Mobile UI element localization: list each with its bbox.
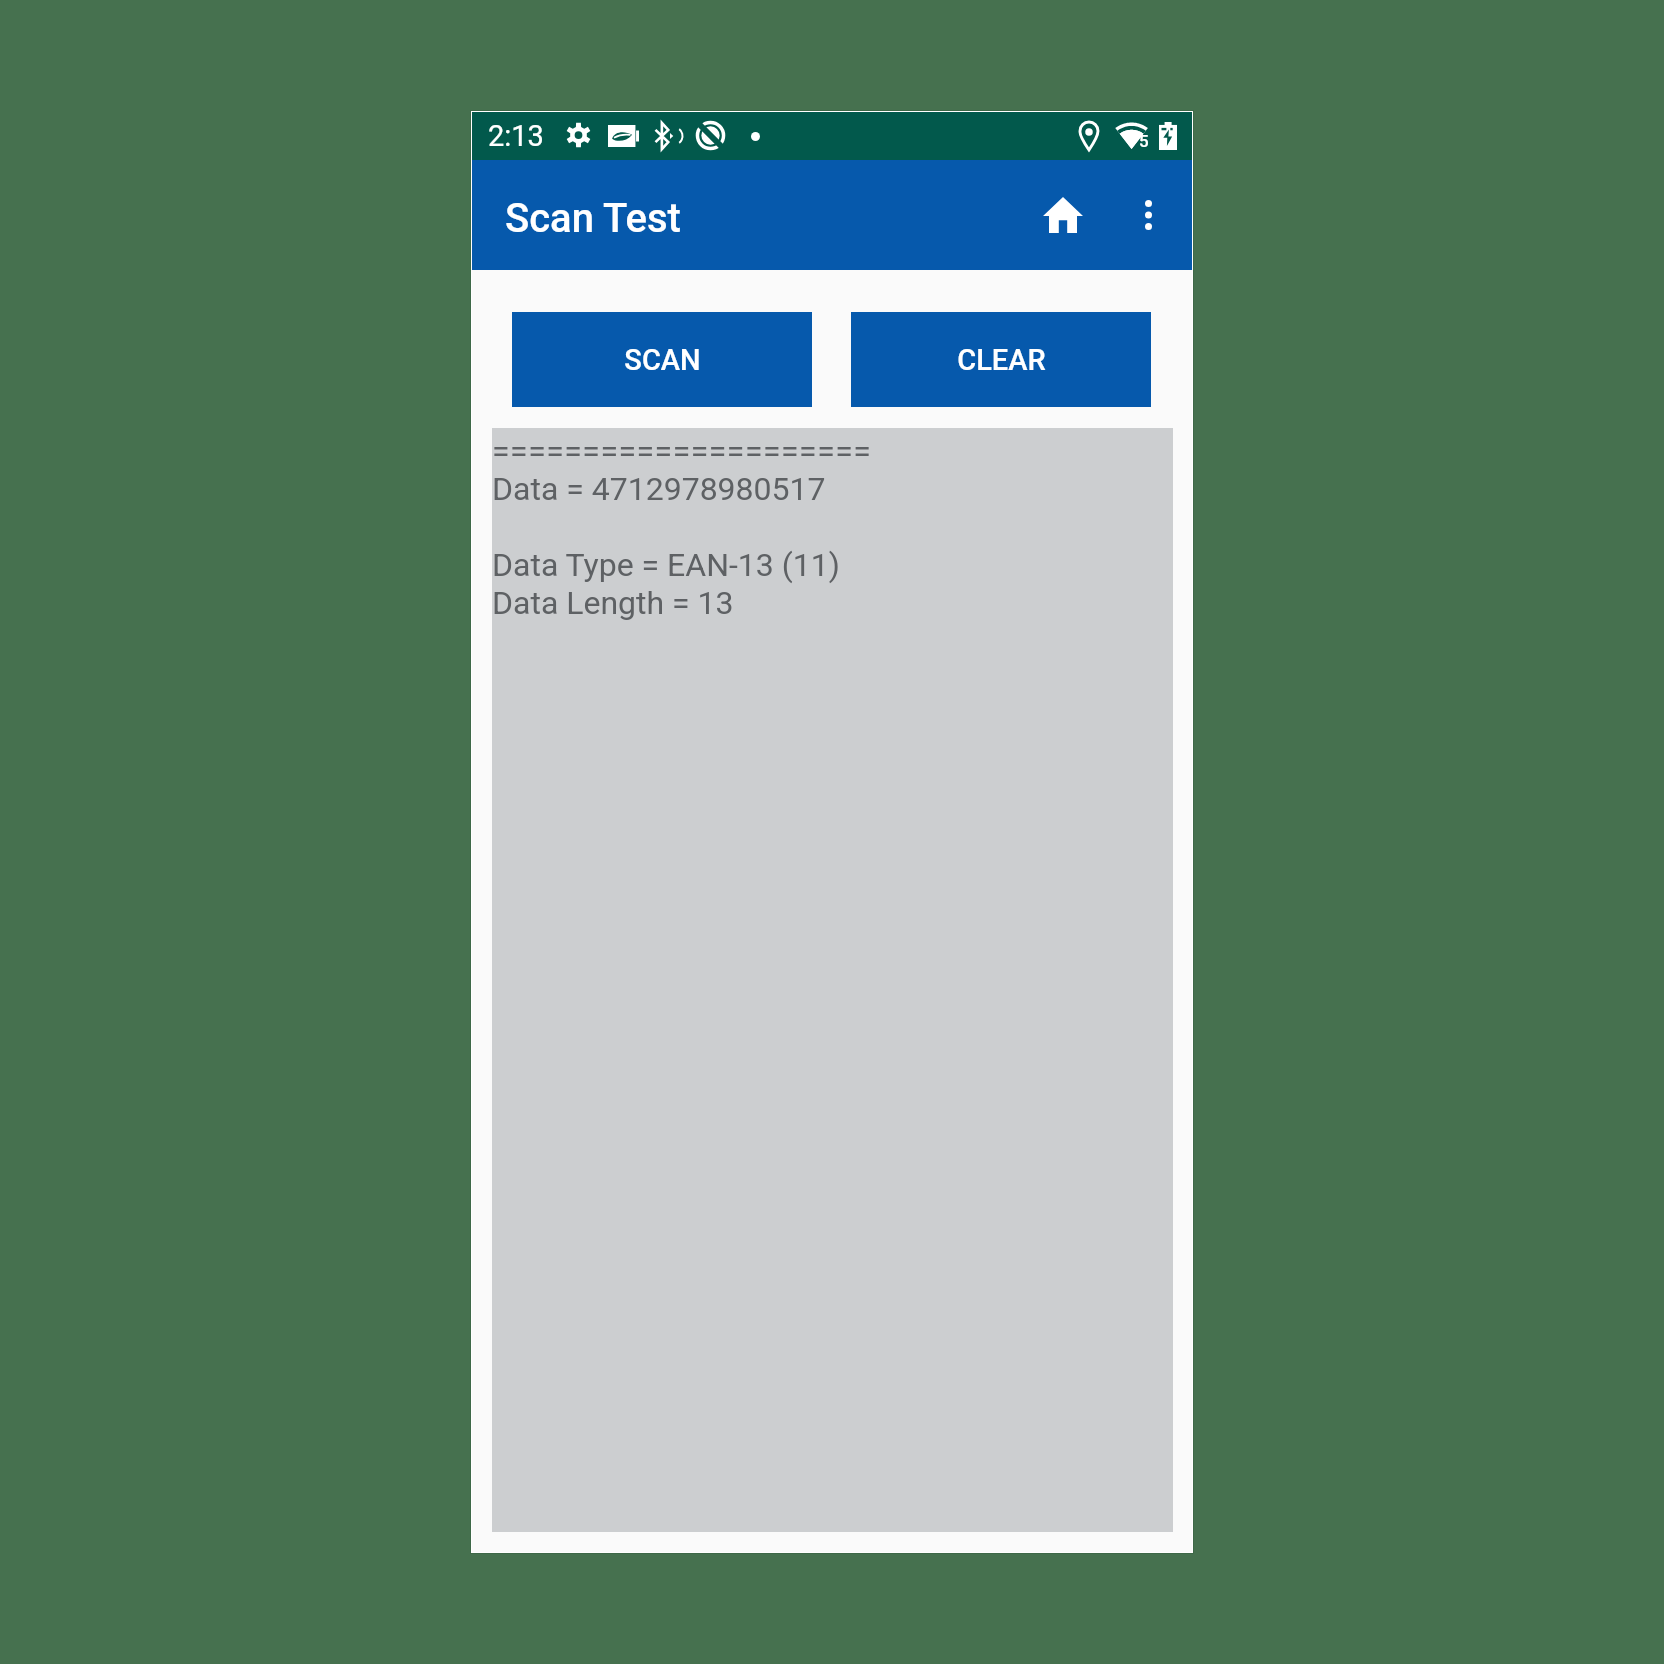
- staticText: =====================: [492, 432, 872, 470]
- staticText: CLEAR: [957, 343, 1046, 377]
- staticText: Data Length = 13: [492, 584, 734, 622]
- button[interactable]: More options: [1124, 191, 1172, 239]
- button[interactable]: CLEAR: [851, 312, 1151, 407]
- button[interactable]: Home: [1039, 191, 1087, 239]
- staticText: Data Type = EAN-13 (11): [492, 546, 840, 584]
- staticText: SCAN: [624, 343, 701, 377]
- staticText: 5: [1139, 131, 1149, 151]
- staticText: 2:13: [488, 119, 544, 153]
- staticText: Scan Test: [505, 195, 681, 242]
- button[interactable]: SCAN: [512, 312, 812, 407]
- staticText: Data = 4712978980517: [492, 470, 826, 508]
